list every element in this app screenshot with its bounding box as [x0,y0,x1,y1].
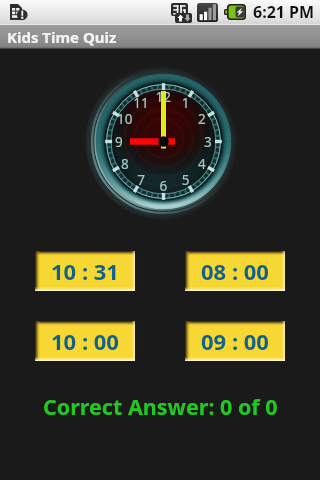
staticText: Kids Time Quiz [7,27,117,47]
staticText: 10 : 00 [51,326,119,356]
staticText: 09 : 00 [201,326,269,356]
button[interactable]: 10 : 31 [35,251,135,291]
button[interactable]: 09 : 00 [185,321,285,361]
staticText: Correct Answer: 0 of 0 [43,392,278,421]
button[interactable]: 08 : 00 [185,251,285,291]
staticText: 6:21 PM [253,1,315,23]
staticText: 10 : 31 [51,256,119,286]
button[interactable]: 10 : 00 [35,321,135,361]
staticText: 08 : 00 [201,256,269,286]
